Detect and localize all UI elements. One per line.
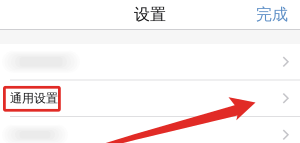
- staticText: 设置: [134, 5, 166, 24]
- staticText: 通用设置: [10, 91, 58, 106]
- button[interactable]: 完成: [250, 1, 294, 28]
- button[interactable]: [0, 44, 300, 79]
- button[interactable]: 通用设置: [0, 80, 300, 116]
- staticText: 完成: [256, 5, 288, 24]
- button[interactable]: [0, 117, 300, 143]
